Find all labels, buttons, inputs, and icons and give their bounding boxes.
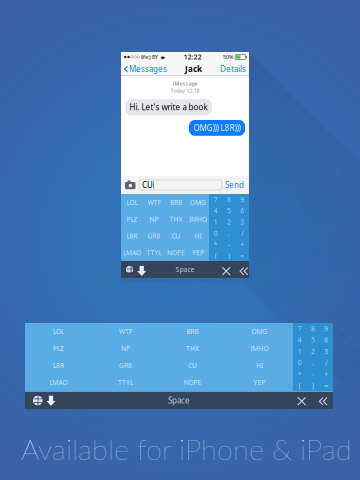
button[interactable]: 0	[293, 357, 306, 368]
button[interactable]: -	[306, 368, 320, 380]
button[interactable]: L8R	[121, 227, 143, 244]
button[interactable]: HI	[226, 357, 293, 374]
button[interactable]: 6	[320, 334, 333, 346]
button[interactable]: PLZ	[25, 340, 92, 357]
button[interactable]: OMG	[187, 194, 209, 211]
staticText: L8R	[126, 231, 137, 240]
button[interactable]: 8	[306, 323, 320, 334]
button[interactable]: 4	[293, 334, 306, 346]
button[interactable]: LOL	[25, 323, 92, 340]
button[interactable]: 3	[236, 216, 249, 227]
button[interactable]: YEP	[226, 374, 293, 391]
button[interactable]: Clear	[220, 261, 229, 278]
button[interactable]: 7	[293, 323, 306, 334]
button[interactable]: Space	[114, 392, 244, 409]
button[interactable]: HI	[187, 227, 209, 244]
button[interactable]: NP	[143, 211, 165, 228]
button[interactable]: (	[209, 250, 222, 261]
button[interactable]: Hide keyboard	[135, 261, 145, 278]
staticText: Today 12:18	[170, 87, 199, 94]
button[interactable]: /	[236, 227, 249, 239]
button[interactable]: BRB	[165, 194, 187, 211]
button[interactable]: L8R	[25, 357, 92, 374]
button[interactable]: LMAO	[121, 244, 143, 261]
button[interactable]: Send	[222, 180, 247, 190]
button[interactable]: Messages	[121, 62, 170, 76]
button[interactable]: *	[293, 368, 306, 380]
button[interactable]: LMAO	[25, 374, 92, 391]
button[interactable]: =	[320, 380, 333, 391]
button[interactable]: LOL	[121, 194, 143, 211]
staticText: iMessage	[172, 80, 197, 87]
staticText: NP	[121, 344, 130, 353]
button[interactable]: THX	[159, 340, 226, 357]
button[interactable]: .	[306, 357, 320, 368]
staticText: 9	[324, 324, 328, 333]
button[interactable]: 0	[209, 227, 222, 239]
button[interactable]: Clear	[295, 392, 307, 409]
button[interactable]: PLZ	[121, 211, 143, 228]
button[interactable]: Hide keyboard	[44, 392, 56, 409]
button[interactable]: CU	[159, 357, 226, 374]
button[interactable]: 8	[222, 194, 236, 205]
staticText: CU	[188, 361, 197, 370]
button[interactable]: +	[236, 239, 249, 250]
button[interactable]: (	[293, 380, 306, 391]
button[interactable]: Details	[217, 62, 249, 76]
button[interactable]: THX	[165, 211, 187, 228]
button[interactable]: 1	[293, 346, 306, 357]
button[interactable]: 6	[236, 205, 249, 216]
button[interactable]: OMG	[226, 323, 293, 340]
button[interactable]: 2	[306, 346, 320, 357]
button[interactable]: 3	[320, 346, 333, 357]
staticText: .	[228, 229, 230, 238]
staticText: L8R	[53, 361, 64, 370]
button[interactable]: *	[209, 239, 222, 250]
staticText: WTF	[147, 198, 160, 207]
button[interactable]: GR8	[92, 357, 159, 374]
button[interactable]: YEP	[187, 244, 209, 261]
staticText: GR8	[147, 231, 160, 240]
button[interactable]: CU	[165, 227, 187, 244]
button[interactable]: =	[236, 250, 249, 261]
button[interactable]: WTF	[143, 194, 165, 211]
button[interactable]: 9	[236, 194, 249, 205]
button[interactable]: Camera	[123, 180, 139, 189]
button[interactable]: )	[306, 380, 320, 391]
button[interactable]: Delete	[237, 261, 247, 278]
button[interactable]: GR8	[143, 227, 165, 244]
button[interactable]: Switch keyboard	[31, 392, 44, 409]
button[interactable]: 5	[222, 205, 236, 216]
button[interactable]: Delete	[317, 392, 328, 409]
button[interactable]: Switch keyboard	[124, 261, 135, 278]
button[interactable]: TTYL	[143, 244, 165, 261]
button[interactable]: IMHO	[187, 211, 209, 228]
staticText: LOL	[53, 327, 64, 336]
button[interactable]: 1	[209, 216, 222, 227]
staticText: -	[312, 370, 314, 378]
staticText: /	[241, 229, 243, 238]
button[interactable]: 5	[306, 334, 320, 346]
button[interactable]: 7	[209, 194, 222, 205]
button[interactable]: 2	[222, 216, 236, 227]
button[interactable]: Space	[158, 261, 212, 278]
button[interactable]: NP	[92, 340, 159, 357]
staticText: HI	[194, 231, 201, 240]
button[interactable]: )	[222, 250, 236, 261]
button[interactable]: 4	[209, 205, 222, 216]
button[interactable]: .	[222, 227, 236, 239]
staticText: (	[215, 251, 217, 260]
button[interactable]: NOPE	[159, 374, 226, 391]
button[interactable]: +	[320, 368, 333, 380]
button[interactable]: 9	[320, 323, 333, 334]
button[interactable]: -	[222, 239, 236, 250]
staticText: 2	[227, 217, 231, 226]
button[interactable]: WTF	[92, 323, 159, 340]
staticText: PLZ	[53, 344, 64, 353]
staticText: CU	[142, 180, 153, 190]
button[interactable]: /	[320, 357, 333, 368]
button[interactable]: BRB	[159, 323, 226, 340]
button[interactable]: TTYL	[92, 374, 159, 391]
button[interactable]: NOPE	[165, 244, 187, 261]
button[interactable]: IMHO	[226, 340, 293, 357]
